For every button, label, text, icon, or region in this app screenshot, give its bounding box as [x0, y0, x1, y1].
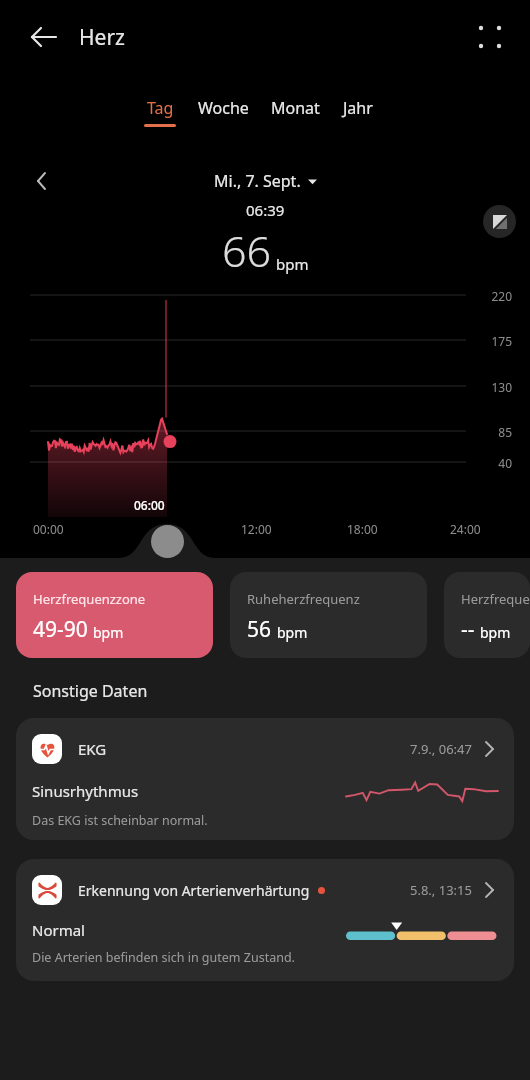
staticText: 00:00 [33, 521, 64, 537]
button[interactable]: Weitere Optionen [468, 15, 512, 59]
staticText: Herz [79, 23, 125, 52]
staticText: bpm [93, 623, 124, 642]
staticText: bpm [277, 623, 308, 642]
staticText: 130 [0, 379, 512, 395]
staticText: 06:00 [134, 497, 165, 513]
button[interactable]: Woche [187, 96, 260, 128]
button[interactable]: Vollbild [483, 205, 516, 238]
staticText: Monat [271, 97, 320, 119]
button[interactable]: Tag [133, 96, 187, 128]
button[interactable]: Monat [260, 96, 331, 128]
staticText: 66 [222, 221, 272, 280]
button[interactable]: Erkennung von Arterienverhärtung [16, 859, 514, 981]
button[interactable]: Mi., 7. Sept. [210, 166, 321, 196]
staticText: Herzfrequenzvariabilität [461, 590, 530, 608]
staticText: Normal [32, 920, 85, 940]
staticText: 56 [247, 615, 272, 644]
staticText: -- [461, 615, 475, 644]
staticText: 5.8., 13:15 [410, 881, 472, 899]
button[interactable]: Zurück [22, 15, 66, 59]
button[interactable]: Jahr [331, 96, 385, 128]
staticText: 220 [0, 288, 512, 304]
staticText: Erkennung von Arterienverhärtung [78, 881, 310, 900]
staticText: 24:00 [450, 521, 481, 537]
staticText: 12:00 [241, 521, 272, 537]
staticText: 06:39 [246, 200, 285, 220]
button[interactable]: Vorheriger Tag [22, 163, 58, 199]
button[interactable]: Ruheherzfrequenz [230, 572, 427, 658]
staticText: bpm [276, 254, 309, 274]
staticText: Die Arterien befinden sich in gutem Zust… [32, 949, 295, 966]
staticText: 7.9., 06:47 [410, 740, 472, 758]
staticText: Woche [198, 97, 249, 119]
staticText: 18:00 [347, 521, 378, 537]
staticText: Das EKG ist scheinbar normal. [32, 812, 208, 829]
staticText: 49-90 [33, 615, 88, 644]
staticText: bpm [480, 623, 511, 642]
staticText: Sinusrhythmus [32, 781, 139, 801]
button[interactable]: Herzfrequenzvariabilität [444, 572, 530, 658]
staticText: Ruheherzfrequenz [247, 590, 360, 608]
staticText: Sonstige Daten [33, 680, 148, 702]
button[interactable]: EKG [16, 718, 514, 840]
staticText: EKG [78, 739, 107, 759]
staticText: Tag [147, 97, 174, 119]
button[interactable]: Zeitpunkt wählen [151, 525, 184, 558]
staticText: 175 [0, 333, 512, 349]
button[interactable]: Herzfrequenzzone [16, 572, 213, 658]
staticText: 40 [0, 455, 512, 471]
staticText: Jahr [343, 97, 373, 119]
staticText: Herzfrequenzzone [33, 590, 146, 608]
staticText: 85 [0, 424, 512, 440]
staticText: Mi., 7. Sept. [214, 170, 301, 192]
